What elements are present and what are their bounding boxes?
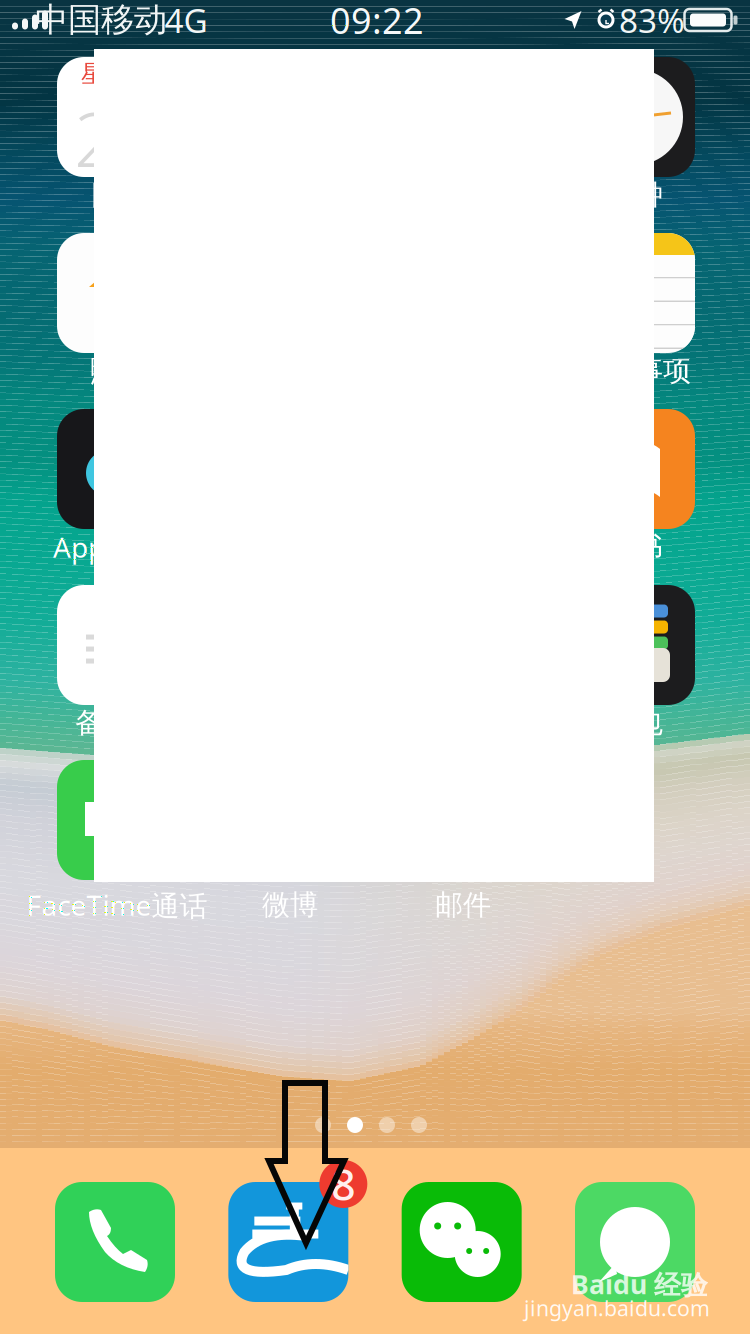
- button[interactable]: 星期日: [57, 57, 177, 177]
- staticText: 钱包: [607, 706, 663, 740]
- staticText: 日历: [89, 178, 145, 212]
- staticText: FaceTime通话: [26, 886, 207, 924]
- button[interactable]: [575, 1182, 695, 1302]
- staticText: 星期日: [81, 59, 153, 89]
- staticText: 时钟: [607, 178, 663, 212]
- button[interactable]: [575, 585, 695, 705]
- button[interactable]: [57, 760, 177, 880]
- staticText: 22: [74, 89, 160, 188]
- staticText: 中国移动: [35, 0, 167, 40]
- button[interactable]: [402, 1182, 522, 1302]
- staticText: 83%: [619, 0, 685, 42]
- button[interactable]: [55, 1182, 175, 1302]
- button[interactable]: [575, 57, 695, 177]
- button[interactable]: 8: [228, 1182, 348, 1302]
- staticText: Baidu 经验: [571, 1266, 708, 1302]
- staticText: 图书: [607, 530, 663, 564]
- button[interactable]: [57, 233, 177, 353]
- staticText: jingyan.baidu.com: [524, 1294, 710, 1322]
- button[interactable]: [575, 409, 695, 529]
- button[interactable]: [57, 409, 177, 529]
- staticText: 8: [331, 1156, 355, 1212]
- staticText: 微博: [262, 888, 318, 922]
- staticText: 4G: [164, 0, 207, 42]
- staticText: 提醒事项: [579, 354, 691, 388]
- button[interactable]: [57, 585, 177, 705]
- staticText: App Store: [53, 528, 181, 566]
- staticText: 备忘录: [75, 706, 159, 740]
- staticText: 照片: [89, 354, 145, 388]
- staticText: 09:22: [330, 0, 424, 44]
- button[interactable]: [575, 233, 695, 353]
- staticText: 邮件: [435, 888, 491, 922]
